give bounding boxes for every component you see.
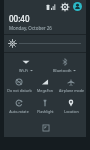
button[interactable]: Airplane mode [58,76,84,95]
button[interactable]: Bluetooth [46,55,83,75]
staticText: 00:40 [9,13,30,24]
button[interactable]: Settings [60,2,69,11]
button[interactable]: Flashlight [32,97,58,116]
staticText: Do not disturb [7,88,32,93]
button[interactable]: Location [58,97,84,116]
staticText: Flashlight [37,109,54,114]
staticText: Monday, October 26 [9,25,52,31]
staticText: Location [64,109,79,114]
staticText: Bluetooth [53,68,72,73]
button[interactable]: User account [73,2,82,11]
button[interactable]: Edit tiles [40,122,51,133]
button[interactable]: MegaFon [32,76,58,95]
button[interactable]: Brightness [9,35,81,52]
button[interactable]: Auto-rotate [6,97,32,116]
staticText: Airplane mode [59,88,84,93]
staticText: MegaFon [37,88,53,93]
button[interactable]: Wi-Fi [7,55,44,75]
staticText: Wi-Fi [19,68,29,73]
staticText: Auto-rotate [9,109,29,114]
button[interactable]: Do not disturb [6,76,32,95]
button[interactable]: 00:40 [9,13,86,31]
